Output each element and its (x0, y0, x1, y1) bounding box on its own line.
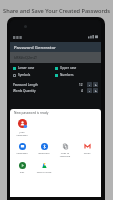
button[interactable]: Increase Password Length (93, 82, 98, 87)
button[interactable]: Decrease Words Quantity (87, 88, 92, 93)
button[interactable]: Save to Drive (34, 162, 54, 173)
staticText: Share and Save Your Created Passwords (0, 7, 113, 15)
staticText: Messages (12, 151, 32, 154)
staticText: - (89, 83, 90, 87)
button[interactable]: Decrease Password Length (87, 82, 92, 87)
button[interactable]: kR8#vQ2mZ! (10, 52, 101, 63)
staticText: Symbols (18, 73, 31, 77)
staticText: Password Generator (14, 44, 56, 50)
staticText: kR8#vQ2mZ! (14, 55, 37, 60)
staticText: Bluetooth (34, 151, 54, 154)
staticText: - (89, 89, 90, 93)
button[interactable]: Gmail (77, 143, 97, 154)
staticText: + (95, 89, 97, 93)
staticText: + (95, 83, 97, 87)
staticText: 4 (81, 89, 83, 93)
staticText: New password is ready (14, 111, 49, 115)
button[interactable]: Password Length (13, 82, 98, 87)
staticText: Gmail (77, 151, 97, 154)
staticText: Copy to clipboard (55, 151, 75, 157)
staticText: Upper case (60, 66, 77, 70)
button[interactable]: Play (12, 162, 32, 173)
button[interactable]: Words Quantity (13, 88, 98, 93)
staticText: Juan Messages (14, 130, 30, 136)
button[interactable]: Copy to clipboard (55, 143, 75, 157)
staticText: Lower case (18, 66, 35, 70)
staticText: Save to Drive (34, 170, 54, 173)
button[interactable]: Bluetooth (34, 143, 54, 154)
staticText: Numbers (60, 73, 74, 77)
button[interactable]: Password Generator (10, 42, 101, 52)
button[interactable]: Upper case (55, 66, 97, 70)
button[interactable] (18, 119, 27, 128)
button[interactable]: Symbols (13, 73, 55, 77)
button[interactable]: Increase Words Quantity (93, 88, 98, 93)
staticText: 12 (79, 83, 83, 87)
button[interactable]: Messages (12, 143, 32, 154)
staticText: Password Length (13, 83, 39, 87)
staticText: Play (12, 170, 32, 173)
button[interactable]: Lower case (13, 66, 55, 70)
staticText: Words Quantity (13, 89, 36, 93)
button[interactable]: Numbers (55, 73, 97, 77)
